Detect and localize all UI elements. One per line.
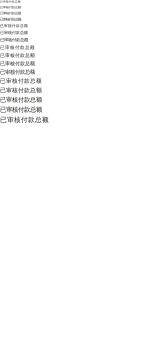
staticText: 已审核付款总额 <box>0 17 21 21</box>
staticText: 已审核付款总额 <box>0 30 28 35</box>
staticText: 已审核付款总额 <box>0 106 42 114</box>
staticText: 已审核付款总额 <box>0 52 35 58</box>
staticText: 已审核付款总额 <box>0 0 21 3</box>
staticText: 已审核付款总额 <box>0 116 49 124</box>
staticText: 已审核付款总额 <box>0 5 21 9</box>
staticText: 已审核付款总额 <box>0 11 21 15</box>
staticText: 已审核付款总额 <box>0 45 35 50</box>
staticText: 已审核付款总额 <box>0 77 42 84</box>
staticText: 已审核付款总额 <box>0 23 28 28</box>
staticText: 已审核付款总额 <box>0 69 35 75</box>
staticText: 已审核付款总额 <box>0 60 35 67</box>
staticText: 已审核付款总额 <box>0 37 28 43</box>
staticText: 已审核付款总额 <box>0 86 42 94</box>
staticText: 已审核付款总额 <box>0 96 42 104</box>
